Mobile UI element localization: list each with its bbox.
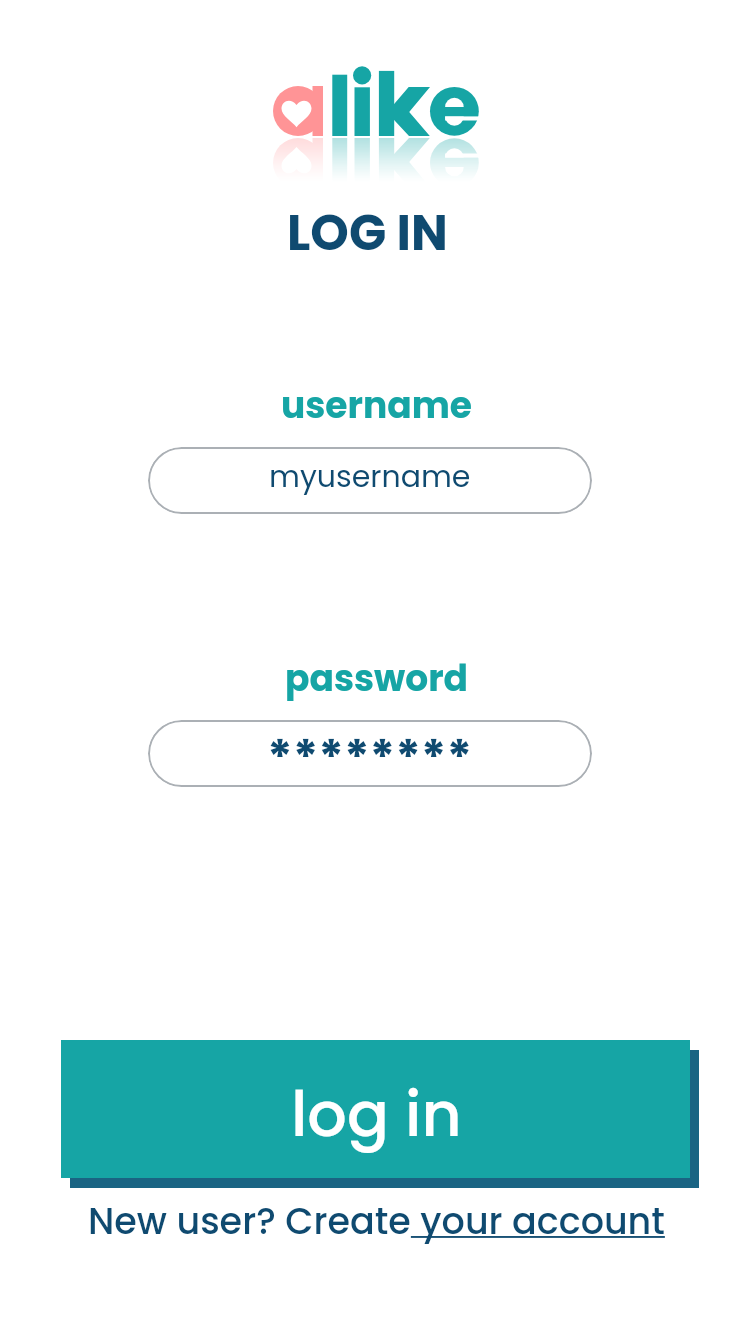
staticText: New user? Create your account <box>88 1196 665 1247</box>
button[interactable]: password field <box>148 720 592 787</box>
staticText: password <box>285 653 469 703</box>
staticText: myusername <box>269 456 471 498</box>
other: alike logo <box>0 0 751 192</box>
staticText: log in <box>291 1071 462 1158</box>
staticText: LOG IN <box>287 199 448 268</box>
staticText: username <box>281 380 472 430</box>
button[interactable]: username field <box>148 447 592 514</box>
button[interactable]: log in <box>61 1040 690 1178</box>
button[interactable]: New user? Create your account <box>88 1196 688 1248</box>
staticText: ******** <box>267 724 473 787</box>
